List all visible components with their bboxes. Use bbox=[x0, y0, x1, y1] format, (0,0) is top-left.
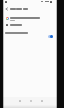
button[interactable] bbox=[29, 99, 33, 103]
button[interactable] bbox=[3, 14, 57, 23]
button[interactable] bbox=[3, 22, 57, 29]
button[interactable] bbox=[40, 99, 44, 103]
button[interactable] bbox=[18, 99, 22, 103]
button[interactable] bbox=[3, 29, 57, 39]
button[interactable] bbox=[5, 7, 9, 11]
